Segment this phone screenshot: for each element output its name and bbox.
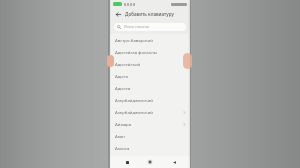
button[interactable]: Азербайджанский <box>110 106 190 118</box>
staticText: Адыгеи <box>115 85 131 91</box>
button[interactable]: Назад <box>114 10 122 18</box>
staticText: Добавить клавиатуру <box>125 11 174 17</box>
staticText: Адыгейский <box>115 61 141 67</box>
button[interactable]: Акан <box>110 130 190 142</box>
button[interactable]: Язык поиска <box>114 23 186 31</box>
button[interactable]: Аймара <box>110 118 190 130</box>
staticText: Аккоса <box>115 145 130 151</box>
staticText: Азербайджанский <box>115 109 153 115</box>
staticText: Аймара <box>115 121 132 127</box>
button[interactable]: Адыгейска фольклы <box>110 46 190 58</box>
button[interactable]: Назад <box>110 8 190 20</box>
staticText: Азербайджанский <box>115 97 153 103</box>
button[interactable]: Адыга <box>110 70 190 82</box>
button[interactable]: Главный экран <box>143 156 157 168</box>
button[interactable]: Адыгейский <box>110 58 190 70</box>
button[interactable]: Назад <box>167 156 181 168</box>
staticText: Акан <box>115 133 125 139</box>
button[interactable]: Азербайджанский <box>110 94 190 106</box>
button[interactable]: Адыгеи <box>110 82 190 94</box>
staticText: Адыгейска фольклы <box>115 49 157 55</box>
staticText: Язык поиска <box>124 24 150 30</box>
staticText: Австро-баварский <box>115 37 153 43</box>
button[interactable]: Аккоса <box>110 142 190 154</box>
staticText: Адыга <box>115 73 128 79</box>
button[interactable]: Последние приложения <box>120 156 134 168</box>
button[interactable]: Австро-баварский <box>110 34 190 46</box>
